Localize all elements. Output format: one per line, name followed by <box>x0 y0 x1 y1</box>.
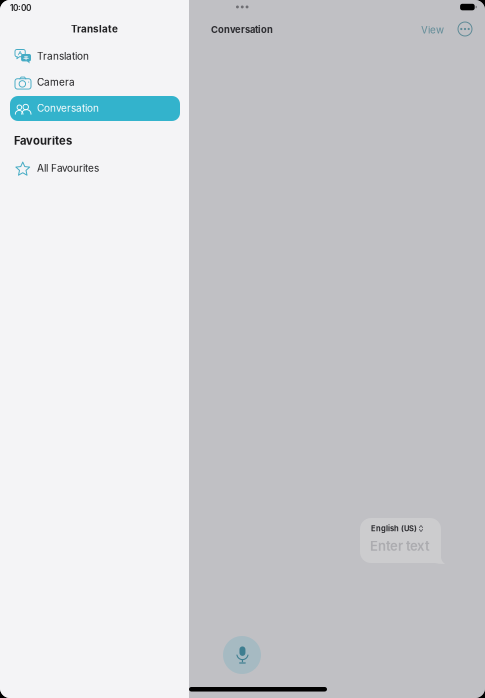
button[interactable]: Translation <box>0 44 180 69</box>
staticText: Camera <box>37 76 75 88</box>
staticText: View <box>421 24 444 36</box>
button[interactable]: View <box>419 22 446 38</box>
staticText: Conversation <box>37 102 99 114</box>
button[interactable]: More options <box>455 19 475 39</box>
button[interactable]: All Favourites <box>0 156 180 181</box>
button[interactable]: English (US) <box>360 518 445 564</box>
button[interactable]: Camera <box>0 70 180 95</box>
staticText: Translate <box>71 23 118 35</box>
staticText: 10:00 <box>10 3 31 13</box>
staticText: All Favourites <box>37 162 99 174</box>
button[interactable]: Record <box>223 636 261 674</box>
button[interactable]: Conversation <box>0 96 180 121</box>
staticText: Enter text <box>370 538 430 554</box>
staticText: English (US) <box>371 524 417 533</box>
staticText: Favourites <box>14 134 72 148</box>
staticText: Translation <box>37 50 89 62</box>
staticText: Conversation <box>211 24 273 35</box>
